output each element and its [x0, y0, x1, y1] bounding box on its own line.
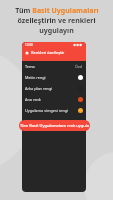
button[interactable]: Ana renk: [22, 94, 86, 105]
staticText: Tüm Basit Uygulamaları: [15, 6, 99, 16]
staticText: Tema: [25, 64, 35, 69]
staticText: Ana renk: [25, 97, 41, 102]
staticText: Renkleri özelleştir: [31, 50, 65, 55]
button[interactable]: Tema: [22, 61, 86, 72]
staticText: özelleştirin ve renkleri: [17, 16, 96, 26]
button[interactable]: Uygulama simgesi rengi: [22, 105, 86, 116]
button[interactable]: Arka plan rengi: [22, 83, 86, 94]
button[interactable]: Tüm Basit Uygulamalara renk uygula: [19, 120, 90, 131]
staticText: Metin rengi: [25, 75, 46, 80]
staticText: Tüm Basit Uygulamalara renk uygula: [20, 123, 90, 128]
staticText: Arka plan rengi: [25, 86, 53, 91]
staticText: Uygulama simgesi rengi: [25, 108, 69, 113]
staticText: 12:30: [25, 43, 33, 47]
staticText: uygulayın: [39, 26, 74, 36]
button[interactable]: Metin rengi: [22, 72, 86, 83]
staticText: Özel: [75, 64, 83, 69]
